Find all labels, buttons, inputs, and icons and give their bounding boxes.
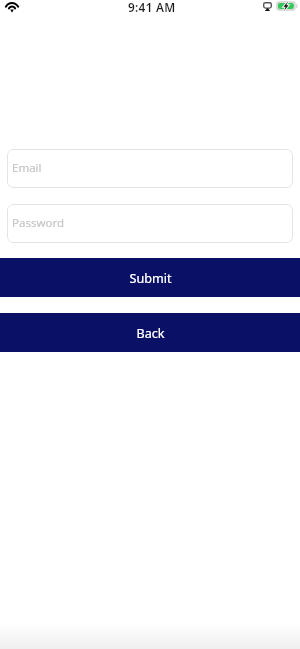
staticText: 9:41 AM xyxy=(128,0,176,13)
staticText: Email xyxy=(12,160,42,176)
other: AirPlay xyxy=(263,2,272,11)
staticText: Submit xyxy=(129,270,172,287)
button[interactable]: Submit xyxy=(0,258,300,297)
other: Battery charging xyxy=(276,1,298,11)
button[interactable]: Password xyxy=(7,204,293,243)
other: Wi-Fi xyxy=(6,2,18,12)
button[interactable]: Email xyxy=(7,149,293,188)
staticText: Back xyxy=(136,325,165,342)
staticText: Password xyxy=(12,215,65,231)
button[interactable]: Back xyxy=(0,313,300,352)
